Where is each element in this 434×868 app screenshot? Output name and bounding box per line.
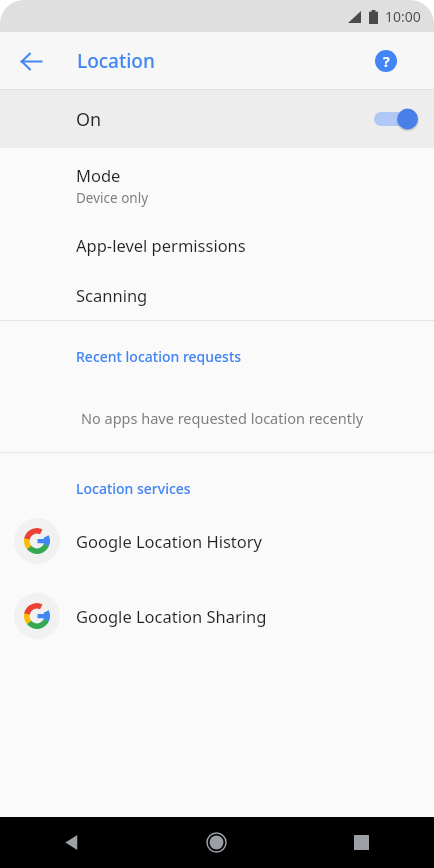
button[interactable]: Help <box>371 46 401 76</box>
staticText: Device only <box>76 189 149 207</box>
staticText: Mode <box>76 164 121 186</box>
button[interactable]: Google Location Sharing <box>0 585 434 647</box>
staticText: No apps have requested location recently <box>81 408 364 428</box>
staticText: App-level permissions <box>76 234 246 256</box>
staticText: On <box>76 107 102 132</box>
button[interactable]: Back <box>14 44 48 78</box>
staticText: 10:00 <box>385 7 421 26</box>
staticText: Location <box>77 48 155 74</box>
staticText: ? <box>383 52 390 71</box>
button[interactable]: Mode <box>0 149 434 220</box>
button[interactable]: App-level permissions <box>0 220 434 270</box>
button[interactable]: Home <box>144 817 289 868</box>
button[interactable]: Google Location History <box>0 510 434 572</box>
button[interactable]: Recent apps <box>289 817 434 868</box>
button[interactable]: On <box>0 90 434 148</box>
staticText: Location services <box>76 479 191 498</box>
button[interactable]: Back <box>0 817 144 868</box>
staticText: Google Location History <box>76 530 263 552</box>
staticText: Recent location requests <box>76 347 242 366</box>
staticText: Scanning <box>76 284 148 306</box>
staticText: Google Location Sharing <box>76 605 267 627</box>
button[interactable]: Scanning <box>0 270 434 320</box>
